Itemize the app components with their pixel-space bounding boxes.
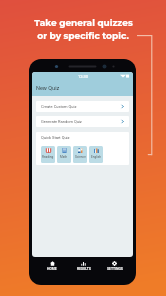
staticText: Generate Random Quiz [41, 119, 82, 124]
button[interactable]: RESULTS [68, 258, 99, 285]
button[interactable]: Generate Random Quiz [36, 116, 129, 127]
staticText: Science [75, 155, 86, 159]
button[interactable]: HOME [36, 258, 68, 285]
button[interactable]: Reading [41, 146, 55, 163]
button[interactable]: English [89, 146, 103, 163]
staticText: Create Custom Quiz [41, 104, 77, 109]
button[interactable]: SETTINGS [99, 258, 130, 285]
staticText: Quick Start Quiz [41, 135, 70, 140]
button[interactable]: Math [57, 146, 71, 163]
staticText: RESULTS [77, 267, 91, 271]
staticText: Take general quizzes [34, 17, 133, 28]
staticText: New Quiz [36, 85, 60, 91]
staticText: English [91, 155, 102, 159]
staticText: HOME [47, 267, 57, 271]
button[interactable]: Create Custom Quiz [36, 101, 129, 112]
button[interactable]: Science [73, 146, 87, 163]
staticText: or by specific topic. [37, 30, 129, 41]
staticText: 12:30 [78, 74, 88, 79]
staticText: SETTINGS [107, 267, 123, 271]
staticText: Math [60, 155, 68, 159]
staticText: Reading [42, 155, 54, 159]
